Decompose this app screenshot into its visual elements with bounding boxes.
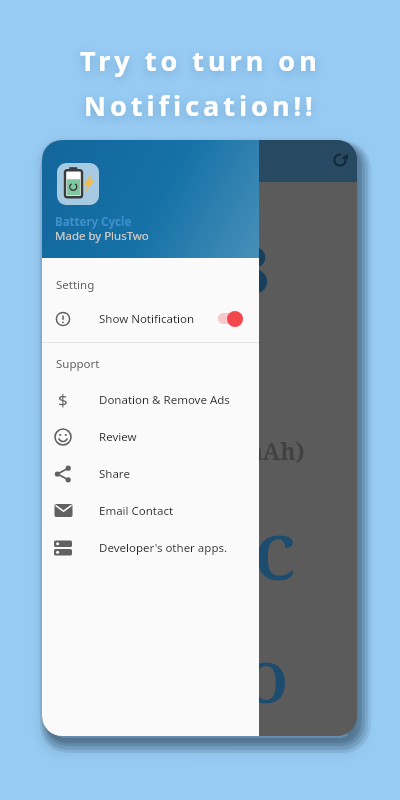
staticText: Notification!! <box>84 87 317 124</box>
staticText: C <box>254 514 296 598</box>
button[interactable]: Review <box>42 418 259 455</box>
button[interactable]: Show Notification <box>42 300 259 337</box>
staticText: Donation & Remove Ads <box>99 392 230 408</box>
button[interactable] <box>327 147 353 173</box>
staticText: Try to turn on <box>80 42 321 79</box>
staticText: $ <box>58 388 68 411</box>
staticText: Made by PlusTwo <box>55 228 149 244</box>
staticText: (4000 mAh) <box>173 435 305 466</box>
staticText: Email Contact <box>99 503 174 519</box>
staticText: Review <box>99 429 137 445</box>
staticText: Developer's other apps. <box>99 540 228 556</box>
staticText: Share <box>99 466 130 482</box>
staticText: 8 <box>232 223 270 313</box>
button[interactable]: Email Contact <box>42 492 259 529</box>
button[interactable]: Developer's other apps. <box>42 529 259 566</box>
staticText: Setting <box>56 277 95 293</box>
staticText: Battery Cycle <box>55 214 132 230</box>
staticText: Support <box>56 356 100 372</box>
staticText: O <box>244 643 289 719</box>
button[interactable]: $ <box>42 381 259 418</box>
staticText: Show Notification <box>99 311 195 327</box>
button[interactable]: Share <box>42 455 259 492</box>
